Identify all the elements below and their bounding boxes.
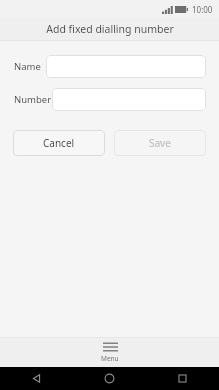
button[interactable]: [52, 88, 206, 111]
button[interactable]: Back: [0, 367, 73, 390]
staticText: Save: [149, 136, 171, 150]
staticText: 10:00: [192, 4, 213, 15]
staticText: Cancel: [43, 136, 75, 150]
button[interactable]: [46, 55, 206, 78]
button[interactable]: Home: [73, 367, 146, 390]
button[interactable]: Cancel: [13, 130, 105, 156]
staticText: Menu: [101, 354, 119, 363]
button[interactable]: Recent apps: [146, 367, 219, 390]
staticText: Add fixed dialling number: [46, 22, 174, 36]
button[interactable]: Menu: [0, 338, 219, 367]
button[interactable]: Save: [114, 130, 206, 156]
staticText: Name: [14, 60, 41, 73]
staticText: Number: [14, 93, 52, 106]
